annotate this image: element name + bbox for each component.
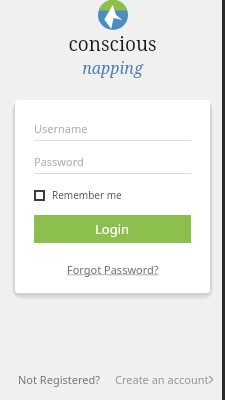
button[interactable]: Login <box>34 215 191 243</box>
staticText: conscious <box>68 31 157 57</box>
staticText: Login <box>95 220 130 238</box>
button[interactable]: Create an account <box>115 368 213 391</box>
staticText: Not Registered? <box>18 372 101 387</box>
button[interactable]: Remember me <box>34 186 122 204</box>
staticText: Create an account <box>115 372 209 387</box>
staticText: Remember me <box>52 188 122 202</box>
staticText: napping <box>82 57 143 79</box>
staticText: Forgot Password? <box>67 262 159 277</box>
button[interactable]: Forgot Password? <box>63 260 163 279</box>
staticText: Password <box>34 154 84 169</box>
staticText: Username <box>34 121 88 136</box>
